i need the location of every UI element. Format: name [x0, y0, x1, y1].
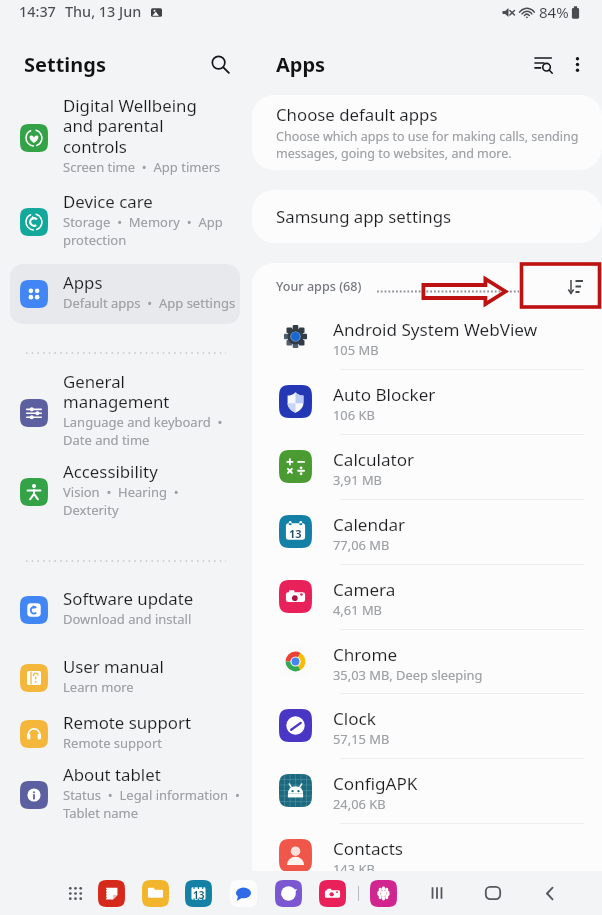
button[interactable]: 13 [252, 499, 602, 564]
staticText: Device care [63, 190, 153, 213]
button[interactable] [10, 383, 240, 443]
button[interactable]: Search settings [204, 48, 236, 80]
staticText: Storage • Memory • App protection [63, 213, 223, 249]
staticText: Status • Legal information • Tablet name [63, 786, 240, 822]
button[interactable]: Auto Blocker [252, 369, 602, 434]
staticText: 14:37 [19, 2, 56, 22]
staticText: Choose which apps to use for making call… [276, 128, 579, 162]
button[interactable]: Clock [252, 693, 602, 758]
staticText: Settings [24, 51, 106, 78]
button[interactable] [10, 648, 240, 708]
staticText: Screen time • App timers [63, 158, 221, 176]
button[interactable]: Calculator [252, 434, 602, 499]
button[interactable]: calendar [185, 880, 212, 907]
staticText: Calendar [333, 513, 406, 536]
staticText: General management [63, 370, 170, 413]
staticText: Remote support [63, 711, 191, 734]
staticText: Choose default apps [276, 103, 438, 126]
staticText: Default apps • App settings [63, 294, 236, 312]
button[interactable]: Home [479, 879, 507, 907]
staticText: Software update [63, 587, 194, 610]
button[interactable]: Android System WebView [252, 304, 602, 369]
button[interactable]: Back [536, 879, 564, 907]
staticText: 84% [539, 2, 569, 22]
button[interactable]: Sort apps [558, 269, 592, 303]
button[interactable] [10, 580, 240, 640]
staticText: Digital Wellbeing and parental controls [63, 94, 197, 158]
staticText: Clock [333, 707, 376, 730]
staticText: Camera [333, 578, 396, 601]
staticText: Learn more [63, 678, 134, 696]
staticText: About tablet [63, 763, 161, 786]
button[interactable] [10, 704, 240, 764]
staticText: 13 [193, 888, 205, 902]
staticText: Apps [276, 51, 326, 78]
button[interactable]: camera [319, 880, 346, 907]
button[interactable]: Samsung app settings [252, 190, 602, 243]
button[interactable]: Choose default apps [252, 95, 602, 170]
button[interactable]: messages [230, 880, 257, 907]
staticText: 4,61 MB [333, 601, 382, 619]
button[interactable]: Camera [252, 564, 602, 629]
staticText: Contacts [333, 837, 404, 860]
staticText: 35,03 MB, Deep sleeping [333, 666, 483, 684]
button[interactable]: flipboard [98, 880, 125, 907]
staticText: Auto Blocker [333, 383, 436, 406]
staticText: User manual [63, 655, 164, 678]
button[interactable]: internet [275, 880, 302, 907]
button[interactable]: files [142, 880, 169, 907]
staticText: Android System WebView [333, 318, 538, 341]
staticText: 77,06 MB [333, 536, 390, 554]
staticText: 57,15 MB [333, 730, 390, 748]
staticText: Language and keyboard • Date and time [63, 413, 223, 449]
staticText: Remote support [63, 734, 163, 752]
button[interactable]: ConfigAPK [252, 758, 602, 823]
staticText: Thu, 13 Jun [65, 2, 142, 22]
button[interactable]: Search apps [526, 47, 560, 81]
button[interactable] [10, 264, 240, 324]
button[interactable] [10, 192, 240, 252]
button[interactable]: Recents [423, 879, 451, 907]
button[interactable] [10, 108, 240, 168]
staticText: Chrome [333, 643, 398, 666]
staticText: 106 KB [333, 406, 375, 424]
staticText: Your apps (68) [276, 278, 362, 295]
staticText: Samsung app settings [276, 205, 452, 228]
staticText: 13 [289, 526, 302, 541]
staticText: 105 MB [333, 341, 379, 359]
staticText: Apps [63, 271, 103, 294]
staticText: Download and install [63, 610, 192, 628]
staticText: 143 KB [333, 860, 375, 878]
staticText: 3,91 MB [333, 471, 382, 489]
button[interactable]: Chrome [252, 629, 602, 694]
staticText: ConfigAPK [333, 772, 418, 795]
staticText: 24,06 KB [333, 795, 386, 813]
staticText: Calculator [333, 448, 415, 471]
staticText: Accessibility [63, 460, 158, 483]
button[interactable]: Contacts [252, 823, 602, 888]
button[interactable]: More options [560, 47, 594, 81]
button[interactable] [10, 462, 240, 522]
staticText: Vision • Hearing • Dexterity [63, 483, 179, 519]
button[interactable] [10, 765, 240, 825]
button[interactable]: gallery [370, 880, 397, 907]
button[interactable]: All apps [61, 879, 89, 907]
button[interactable]: Apps [10, 264, 240, 324]
